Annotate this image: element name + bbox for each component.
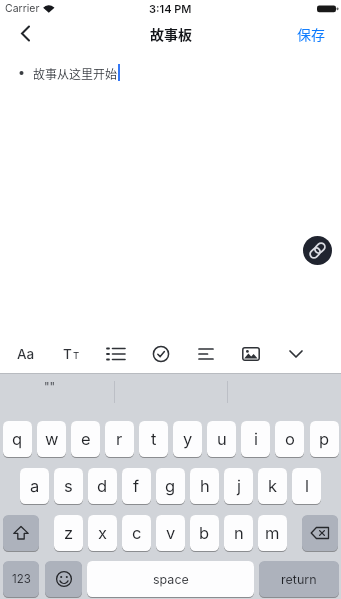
button[interactable]: w <box>37 421 66 457</box>
button[interactable]: Aa <box>8 335 44 372</box>
button[interactable]: return <box>259 561 339 597</box>
button[interactable] <box>98 335 134 372</box>
button[interactable]: g <box>156 468 185 504</box>
staticText: r <box>116 429 123 449</box>
button[interactable]: space <box>87 561 254 597</box>
button[interactable]: p <box>310 421 339 457</box>
staticText: x <box>98 523 108 543</box>
button[interactable]: u <box>207 421 236 457</box>
button[interactable]: a <box>20 468 49 504</box>
staticText: 故事板 <box>150 24 192 44</box>
button[interactable] <box>278 335 314 372</box>
button[interactable] <box>143 335 179 372</box>
staticText: space <box>153 572 189 587</box>
button[interactable]: 保存 <box>288 18 334 50</box>
staticText: T <box>73 350 80 361</box>
staticText: return <box>281 572 317 587</box>
button[interactable]: t <box>139 421 168 457</box>
staticText: k <box>268 476 278 496</box>
staticText: "" <box>44 379 56 394</box>
button[interactable]: 123 <box>3 561 39 597</box>
button[interactable] <box>188 335 224 372</box>
staticText: z <box>64 523 74 543</box>
button[interactable]: s <box>54 468 83 504</box>
staticText: h <box>200 476 210 496</box>
button[interactable]: d <box>88 468 117 504</box>
button[interactable] <box>303 236 332 265</box>
staticText: g <box>165 476 176 496</box>
staticText: m <box>265 523 280 543</box>
staticText: j <box>237 476 241 496</box>
staticText: Aa <box>17 346 35 362</box>
button[interactable]: r <box>105 421 134 457</box>
button[interactable]: k <box>258 468 287 504</box>
button[interactable] <box>302 515 338 551</box>
staticText: o <box>285 429 295 449</box>
staticText: 保存 <box>297 24 325 44</box>
button[interactable]: e <box>71 421 100 457</box>
button[interactable]: m <box>258 515 287 551</box>
staticText: a <box>30 476 40 496</box>
button[interactable] <box>45 561 82 597</box>
button[interactable]: T <box>53 335 89 372</box>
staticText: s <box>64 476 73 496</box>
button[interactable]: l <box>292 468 321 504</box>
staticText: y <box>183 429 193 449</box>
button[interactable]: n <box>224 515 253 551</box>
staticText: n <box>234 523 244 543</box>
button[interactable] <box>10 20 40 48</box>
button[interactable]: f <box>122 468 151 504</box>
staticText: d <box>97 476 108 496</box>
button[interactable]: i <box>241 421 270 457</box>
staticText: q <box>12 429 23 449</box>
staticText: u <box>217 429 227 449</box>
button[interactable]: b <box>190 515 219 551</box>
staticText: Carrier <box>5 2 40 15</box>
button[interactable]: h <box>190 468 219 504</box>
staticText: 123 <box>12 572 31 586</box>
button[interactable]: o <box>275 421 304 457</box>
staticText: p <box>319 429 330 449</box>
button[interactable]: c <box>122 515 151 551</box>
button[interactable]: x <box>88 515 117 551</box>
staticText: 3:14 PM <box>149 2 192 15</box>
button[interactable]: j <box>224 468 253 504</box>
staticText: t <box>151 429 157 449</box>
button[interactable]: q <box>3 421 32 457</box>
staticText: 故事从这里开始 <box>33 65 118 82</box>
staticText: c <box>132 523 142 543</box>
staticText: b <box>199 523 210 543</box>
staticText: f <box>133 476 140 496</box>
staticText: l <box>305 476 309 496</box>
staticText: T <box>63 346 72 362</box>
button[interactable]: z <box>54 515 83 551</box>
staticText: e <box>81 429 91 449</box>
button[interactable] <box>3 515 39 551</box>
button[interactable]: v <box>156 515 185 551</box>
staticText: v <box>166 523 176 543</box>
staticText: w <box>45 429 59 449</box>
button[interactable] <box>233 335 269 372</box>
staticText: i <box>254 429 258 449</box>
button[interactable]: y <box>173 421 202 457</box>
